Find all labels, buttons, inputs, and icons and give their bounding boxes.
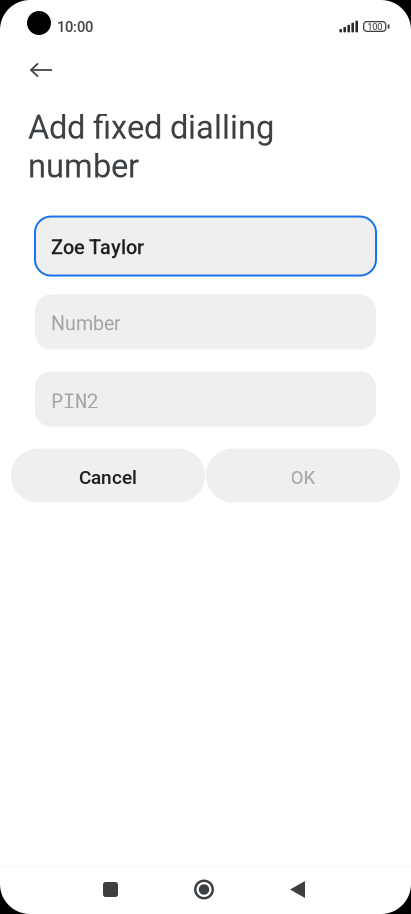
button[interactable]: Home <box>157 866 251 913</box>
staticText: Number <box>51 312 121 335</box>
button[interactable]: Cancel <box>11 449 205 503</box>
button[interactable]: OK <box>206 449 400 503</box>
staticText: Add fixed dialling number <box>28 108 274 186</box>
staticText: Zoe Taylor <box>51 236 144 259</box>
button[interactable]: Back <box>251 866 344 913</box>
button[interactable]: Zoe Taylor <box>35 217 376 276</box>
staticText: 100 <box>367 21 382 32</box>
staticText: OK <box>290 466 315 489</box>
button[interactable]: Recent apps <box>64 866 157 913</box>
button[interactable]: PIN2 <box>35 372 376 427</box>
staticText: Cancel <box>79 466 137 489</box>
button[interactable]: Number <box>35 295 376 350</box>
staticText: 10:00 <box>57 18 93 36</box>
staticText: PIN2 <box>51 387 99 414</box>
button[interactable]: Back <box>18 47 64 93</box>
